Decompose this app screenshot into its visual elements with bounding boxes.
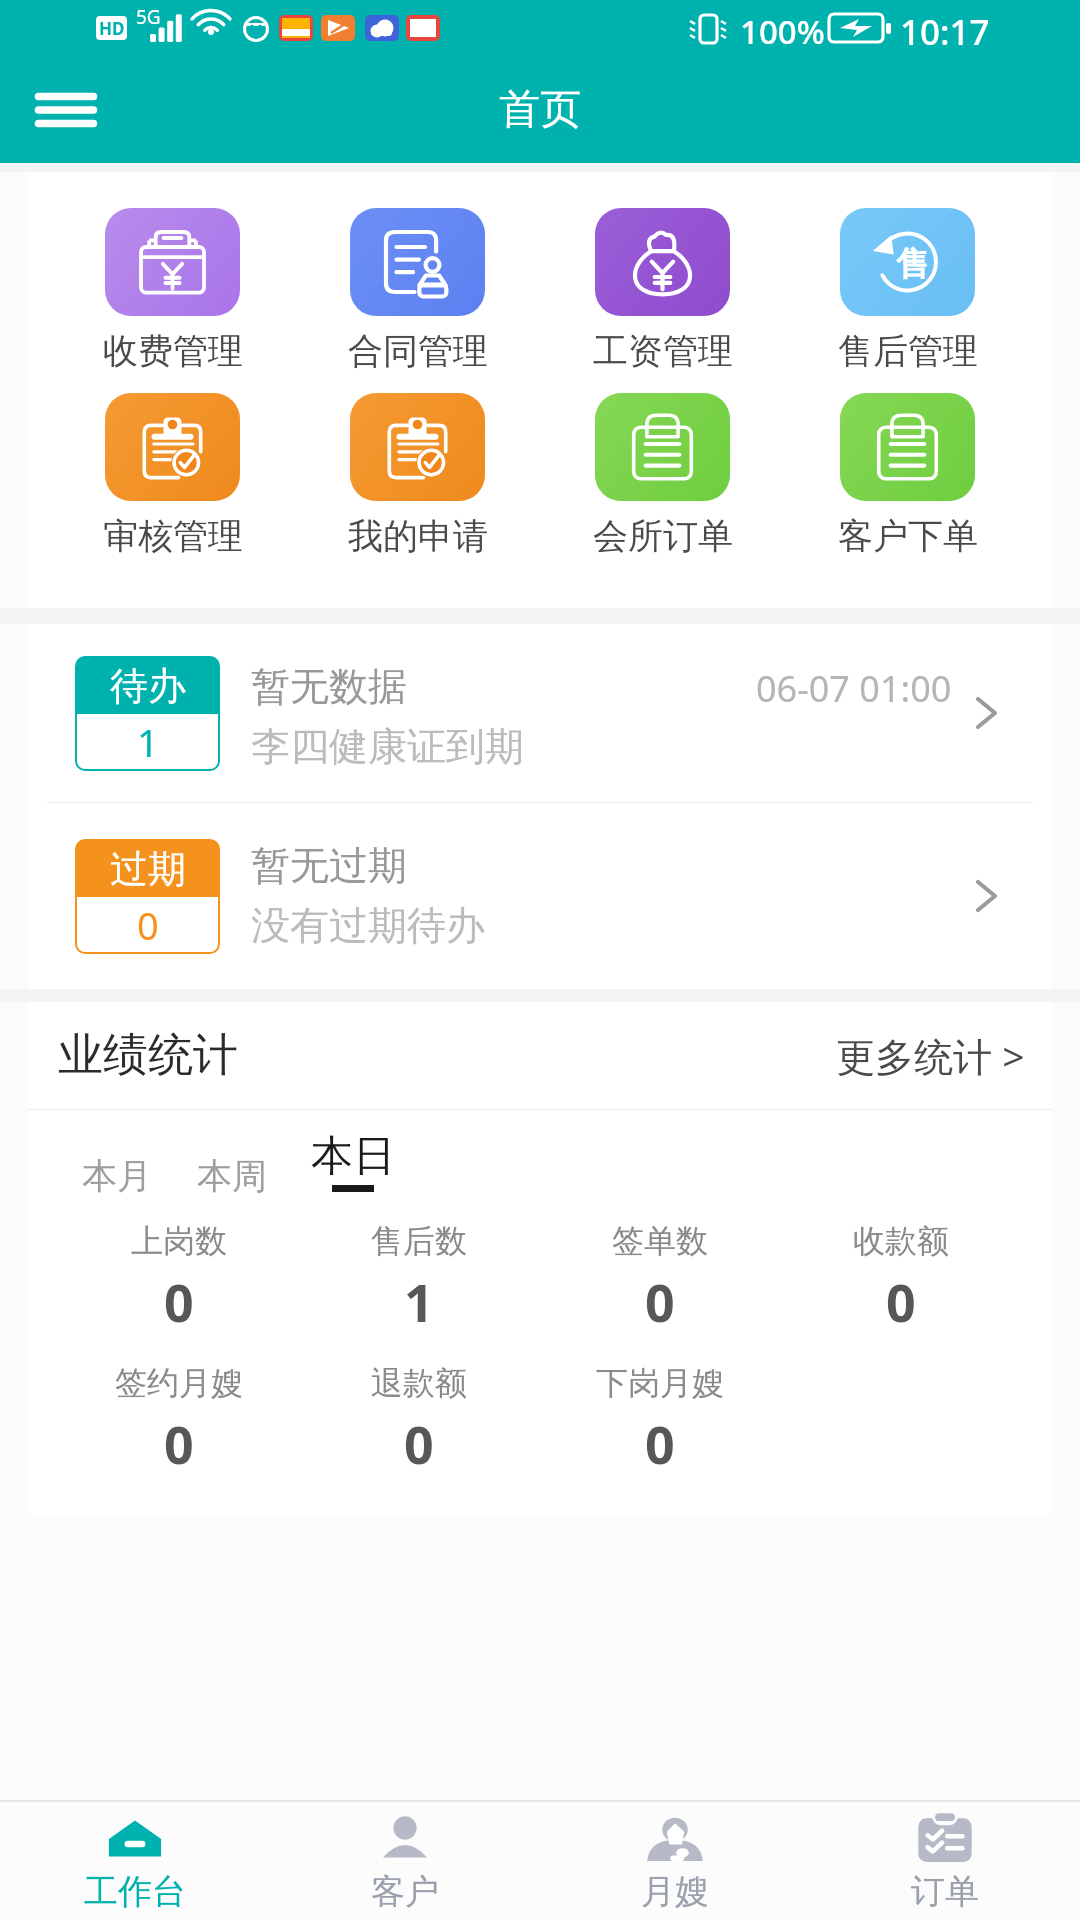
button[interactable]: 过期	[28, 803, 1052, 989]
staticText: 本月	[82, 1154, 152, 1198]
staticText: 06-07 01:00	[756, 664, 952, 713]
staticText: 签约月嫂	[115, 1363, 243, 1403]
staticText: 5G	[136, 4, 161, 30]
button[interactable]: 审核管理	[50, 393, 295, 558]
staticText: 100%	[740, 9, 825, 54]
staticText: 下岗月嫂	[596, 1363, 724, 1403]
staticText: 工作台	[84, 1870, 186, 1913]
button[interactable]: 本周	[191, 1148, 273, 1204]
staticText: 暂无过期	[251, 841, 407, 890]
staticText: 会所订单	[593, 514, 733, 558]
staticText: 收费管理	[103, 329, 243, 373]
button[interactable]: 客户	[270, 1802, 540, 1920]
staticText: 本周	[197, 1154, 267, 1198]
staticText: 1	[404, 1266, 434, 1337]
staticText: 0	[404, 1408, 434, 1479]
staticText: 售后管理	[838, 329, 978, 373]
staticText: 0	[137, 899, 159, 951]
button[interactable]: 合同管理	[295, 208, 540, 373]
staticText: HD	[99, 17, 125, 40]
staticText: 过期	[110, 845, 186, 893]
staticText: 0	[645, 1408, 675, 1479]
staticText: 暂无数据	[251, 662, 407, 711]
button[interactable]: 本月	[76, 1148, 158, 1204]
staticText: 月嫂	[641, 1870, 709, 1913]
staticText: 合同管理	[348, 329, 488, 373]
staticText: 10:17	[900, 8, 990, 56]
button[interactable]: 更多统计 >	[812, 1017, 1052, 1094]
button[interactable]: 本日	[305, 1124, 401, 1198]
staticText: 售	[896, 243, 929, 285]
staticText: 0	[164, 1266, 194, 1337]
staticText: 0	[645, 1266, 675, 1337]
staticText: 上岗数	[131, 1221, 227, 1261]
button[interactable]: 客户下单	[785, 393, 1030, 558]
staticText: 待办	[110, 662, 186, 710]
staticText: 退款额	[371, 1363, 467, 1403]
staticText: 售后数	[371, 1221, 467, 1261]
staticText: 客户下单	[838, 514, 978, 558]
staticText: 客户	[371, 1870, 439, 1913]
button[interactable]: Menu	[12, 64, 120, 160]
button[interactable]: 待办	[28, 624, 1052, 802]
staticText: 李四健康证到期	[251, 722, 524, 771]
button[interactable]: 售	[785, 208, 1030, 373]
staticText: 0	[164, 1408, 194, 1479]
staticText: 业绩统计	[58, 1027, 238, 1084]
staticText: 更多统计 >	[836, 1029, 1025, 1082]
staticText: 签单数	[612, 1221, 708, 1261]
button[interactable]: 收费管理	[50, 208, 295, 373]
staticText: 1	[137, 716, 159, 768]
staticText: 0	[886, 1266, 916, 1337]
button[interactable]: 订单	[810, 1802, 1080, 1920]
staticText: 首页	[499, 84, 581, 136]
staticText: 收款额	[853, 1221, 949, 1261]
staticText: 本日	[311, 1130, 395, 1183]
staticText: 没有过期待办	[251, 901, 485, 950]
button[interactable]: 会所订单	[540, 393, 785, 558]
button[interactable]: 工资管理	[540, 208, 785, 373]
button[interactable]: 月嫂	[540, 1802, 810, 1920]
staticText: 订单	[911, 1870, 979, 1913]
button[interactable]: 我的申请	[295, 393, 540, 558]
button[interactable]: 工作台	[0, 1802, 270, 1920]
staticText: 工资管理	[593, 329, 733, 373]
staticText: 审核管理	[103, 514, 243, 558]
staticText: 我的申请	[348, 514, 488, 558]
